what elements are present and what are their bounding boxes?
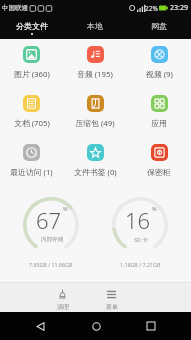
- button[interactable]: Home: [81, 312, 111, 340]
- button[interactable]: 菜单: [87, 289, 136, 311]
- button[interactable]: 16: [101, 197, 179, 268]
- staticText: 分类文件: [16, 21, 48, 31]
- staticText: %: [63, 205, 68, 212]
- button[interactable]: Back: [25, 312, 55, 340]
- staticText: 最近访问 (1): [10, 167, 53, 178]
- button[interactable]: Recents: [136, 312, 166, 340]
- staticText: 7.93GB / 11.66GB: [29, 261, 73, 268]
- button[interactable]: 67: [12, 197, 90, 268]
- staticText: 网盘: [151, 21, 167, 31]
- staticText: %: [152, 205, 157, 212]
- button[interactable]: 文件书签 (0): [63, 144, 127, 193]
- button[interactable]: 清理: [38, 289, 87, 311]
- button[interactable]: 分类文件: [0, 16, 63, 35]
- button[interactable]: 图片 (360): [0, 46, 63, 95]
- staticText: 图片 (360): [14, 69, 50, 80]
- staticText: 应用: [151, 118, 167, 128]
- staticText: 压缩包 (49): [75, 118, 115, 129]
- staticText: 23:29: [170, 3, 188, 13]
- staticText: 本地: [87, 21, 103, 31]
- button[interactable]: 保密柜: [127, 144, 191, 193]
- button[interactable]: 最近访问 (1): [0, 144, 63, 193]
- button[interactable]: 应用: [127, 95, 191, 144]
- button[interactable]: 视频 (9): [127, 46, 191, 95]
- staticText: 16: [125, 205, 151, 235]
- button[interactable]: 本地: [63, 16, 127, 33]
- staticText: 22%: [145, 4, 158, 13]
- staticText: 保密柜: [147, 167, 171, 177]
- button[interactable]: 文档 (705): [0, 95, 63, 144]
- staticText: 菜单: [106, 303, 118, 311]
- staticText: 文档 (705): [14, 118, 50, 129]
- button[interactable]: 网盘: [127, 16, 191, 33]
- staticText: 视频 (9): [146, 69, 173, 80]
- staticText: 中国联通: [2, 4, 28, 12]
- staticText: 文件书签 (0): [74, 167, 117, 178]
- staticText: 清理: [57, 303, 69, 311]
- button[interactable]: 压缩包 (49): [63, 95, 127, 144]
- staticText: 67: [36, 205, 62, 235]
- staticText: 音频 (195): [77, 69, 113, 80]
- staticText: SD 卡: [134, 236, 148, 244]
- staticText: 1.18GB / 7.21GB: [120, 261, 161, 268]
- staticText: 内部存储: [41, 236, 63, 243]
- button[interactable]: 音频 (195): [63, 46, 127, 95]
